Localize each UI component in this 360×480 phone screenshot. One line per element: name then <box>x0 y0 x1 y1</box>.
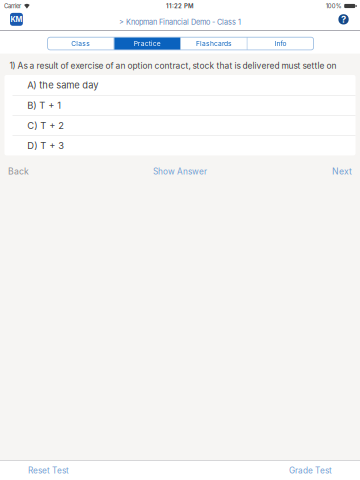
button[interactable]: Class <box>48 37 114 50</box>
button[interactable]: Next <box>292 160 352 182</box>
staticText: Practice <box>134 40 161 47</box>
staticText: A) the same day <box>27 79 98 91</box>
staticText: ? <box>341 14 346 25</box>
staticText: 1) As a result of exercise of an option … <box>9 61 336 71</box>
staticText: C) T + 2 <box>27 120 64 131</box>
staticText: Carrier <box>4 2 21 9</box>
button[interactable]: Info <box>248 37 313 50</box>
staticText: Next <box>332 166 352 177</box>
staticText: 11:22 PM <box>166 2 194 9</box>
button[interactable]: B) T + 1 <box>4 95 355 115</box>
staticText: B) T + 1 <box>27 100 61 111</box>
button[interactable]: Back <box>8 160 68 182</box>
staticText: > Knopman Financial Demo - Class 1 <box>119 18 241 26</box>
staticText: Info <box>274 40 286 47</box>
staticText: Class <box>71 40 90 47</box>
button[interactable]: Knopman Marks home <box>10 13 23 26</box>
button[interactable]: A) the same day <box>4 75 355 95</box>
staticText: Grade Test <box>289 466 332 475</box>
staticText: Show Answer <box>153 166 207 176</box>
staticText: Flashcards <box>196 40 232 47</box>
button[interactable]: C) T + 2 <box>4 115 355 135</box>
button[interactable]: Flashcards <box>181 37 247 50</box>
button[interactable]: Show Answer <box>153 160 207 182</box>
button[interactable]: Grade Test <box>289 461 332 480</box>
button[interactable]: Practice <box>114 37 180 50</box>
staticText: 100% <box>326 2 342 9</box>
staticText: Reset Test <box>28 466 69 475</box>
staticText: KM <box>10 15 22 24</box>
staticText: Back <box>8 166 29 177</box>
button[interactable]: Help <box>337 13 350 26</box>
staticText: D) T + 3 <box>27 140 64 151</box>
button[interactable]: D) T + 3 <box>4 135 355 155</box>
button[interactable]: Reset Test <box>28 461 69 480</box>
